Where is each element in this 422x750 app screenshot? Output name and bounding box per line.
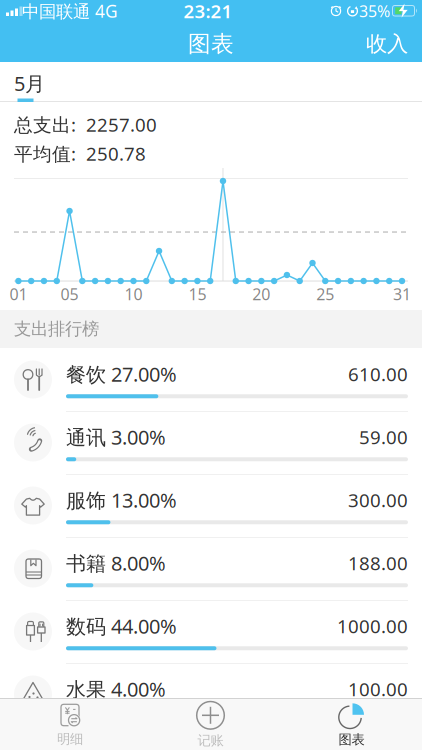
button[interactable]: 数码 44.00% [0, 600, 422, 663]
staticText: 10 [124, 283, 142, 305]
staticText: 支出排行榜 [14, 318, 99, 340]
button[interactable]: 图表 [281, 700, 422, 750]
staticText: 23:21 [183, 0, 232, 23]
button[interactable]: 收入 [366, 31, 408, 57]
staticText: 31 [393, 283, 411, 305]
staticText: 通讯 3.00% [66, 424, 166, 450]
staticText: 35% [359, 0, 390, 22]
staticText: 图表 [188, 30, 234, 58]
staticText: 记账 [197, 732, 223, 749]
staticText: 服饰 13.00% [66, 487, 177, 513]
staticText: 中国联通 4G [22, 0, 118, 22]
button[interactable]: 通讯 3.00% [0, 411, 422, 474]
staticText: 610.00 [348, 362, 408, 386]
staticText: 数码 44.00% [66, 613, 177, 639]
staticText: 明细 [57, 731, 83, 747]
button[interactable]: 明细 [0, 700, 140, 750]
button[interactable]: 餐饮 27.00% [0, 348, 422, 411]
staticText: 总支出: 2257.00 [14, 112, 157, 137]
staticText: 平均值: 250.78 [14, 141, 146, 166]
button[interactable]: 服饰 13.00% [0, 474, 422, 537]
staticText: 300.00 [348, 488, 408, 512]
button[interactable]: 水果 4.00% [0, 663, 422, 726]
button[interactable]: 书籍 8.00% [0, 537, 422, 600]
staticText: 05 [60, 283, 78, 305]
staticText: 188.00 [348, 551, 408, 575]
staticText: 收入 [366, 31, 408, 57]
staticText: 15 [188, 283, 206, 305]
staticText: 20 [252, 283, 270, 305]
staticText: 图表 [338, 731, 364, 748]
staticText: 01 [9, 283, 27, 305]
staticText: 书籍 8.00% [66, 550, 166, 576]
button[interactable]: 记账 [140, 700, 281, 750]
staticText: 25 [316, 283, 334, 305]
staticText: 1000.00 [337, 614, 408, 638]
staticText: 水果 4.00% [66, 676, 166, 702]
staticText: 59.00 [359, 425, 408, 449]
staticText: 5月 [14, 70, 45, 97]
staticText: 餐饮 27.00% [66, 361, 177, 387]
button[interactable]: 5月 [14, 70, 45, 97]
staticText: 100.00 [348, 677, 408, 701]
